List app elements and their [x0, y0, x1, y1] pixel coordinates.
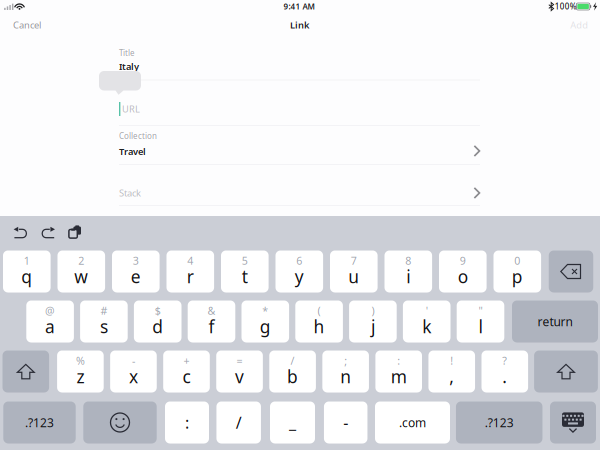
button[interactable]: return — [512, 300, 598, 342]
staticText: * — [262, 303, 268, 318]
staticText: Title — [119, 48, 135, 58]
staticText: - — [132, 353, 135, 368]
button[interactable] — [83, 401, 157, 443]
staticText: w — [74, 265, 88, 288]
button[interactable]: _ — [270, 401, 315, 443]
staticText: g — [260, 315, 271, 338]
button[interactable]: .com — [375, 401, 450, 443]
staticText: r — [187, 265, 194, 288]
staticText: . — [502, 365, 507, 388]
button[interactable]: # — [80, 300, 128, 342]
button[interactable]: = — [216, 350, 263, 392]
staticText: ; — [344, 353, 347, 368]
button[interactable]: 0 — [493, 250, 541, 292]
button[interactable]: $ — [134, 300, 181, 342]
staticText: d — [152, 315, 163, 338]
staticText: Collection — [119, 131, 157, 141]
button[interactable]: Stack — [0, 0, 600, 216]
button[interactable]: 4 — [166, 250, 214, 292]
staticText: % — [76, 353, 85, 368]
staticText: x — [129, 365, 138, 388]
staticText: = — [236, 353, 242, 368]
button[interactable]: ' — [403, 300, 450, 342]
button[interactable]: Undo — [8, 222, 34, 244]
staticText: " — [478, 303, 482, 318]
staticText: c — [182, 365, 190, 388]
staticText: 9 — [460, 253, 466, 268]
staticText: f — [208, 315, 214, 338]
button[interactable]: ) — [349, 300, 397, 342]
staticText: / — [236, 412, 242, 433]
staticText: ! — [450, 353, 453, 368]
button[interactable]: : — [165, 401, 209, 443]
button[interactable]: .?123 — [456, 401, 542, 443]
staticText: ( — [318, 303, 321, 318]
staticText: t — [242, 265, 248, 288]
staticText: s — [100, 315, 108, 338]
staticText: n — [340, 365, 351, 388]
staticText: k — [422, 315, 431, 338]
staticText: b — [287, 365, 298, 388]
button[interactable]: " — [457, 300, 504, 342]
staticText: Cancel — [13, 19, 41, 31]
staticText: Travel — [119, 145, 146, 158]
button[interactable]: Redo — [35, 222, 61, 244]
button[interactable]: 2 — [57, 250, 105, 292]
staticText: 5 — [242, 253, 248, 268]
staticText: q — [21, 265, 32, 288]
staticText: 9:41 AM — [283, 1, 314, 12]
button[interactable]: 8 — [384, 250, 432, 292]
staticText: e — [131, 265, 141, 288]
button[interactable]: & — [188, 300, 235, 342]
button[interactable]: Cancel — [7, 15, 47, 35]
staticText: & — [207, 303, 215, 318]
staticText: v — [235, 365, 244, 388]
button[interactable]: 9 — [439, 250, 487, 292]
staticText: u — [348, 265, 359, 288]
button[interactable] — [549, 250, 593, 292]
staticText: : — [397, 353, 400, 368]
staticText: 4 — [187, 253, 193, 268]
button[interactable] — [550, 401, 596, 443]
staticText: m — [391, 365, 407, 388]
button[interactable]: - — [110, 350, 157, 392]
button[interactable]: 7 — [330, 250, 378, 292]
button[interactable]: / — [269, 350, 316, 392]
button[interactable]: .?123 — [3, 401, 76, 443]
button[interactable]: 3 — [112, 250, 160, 292]
button[interactable]: + — [163, 350, 210, 392]
staticText: Link — [290, 19, 309, 31]
staticText: $ — [155, 303, 161, 318]
staticText: 100% — [555, 1, 577, 12]
staticText: z — [76, 365, 84, 388]
button[interactable]: 5 — [221, 250, 269, 292]
button[interactable]: ! — [428, 350, 475, 392]
staticText: _ — [289, 412, 296, 433]
staticText: # — [100, 303, 107, 318]
button[interactable]: Collection — [0, 0, 600, 216]
button[interactable]: ; — [322, 350, 369, 392]
button[interactable]: @ — [26, 300, 74, 342]
staticText: 2 — [78, 253, 84, 268]
staticText: ) — [371, 303, 374, 318]
button[interactable]: / — [216, 401, 261, 443]
button[interactable] — [2, 350, 49, 392]
staticText: j — [371, 315, 375, 338]
button[interactable]: % — [57, 350, 104, 392]
button[interactable]: 1 — [3, 250, 51, 292]
staticText: .?123 — [25, 414, 54, 430]
button[interactable]: : — [375, 350, 422, 392]
button[interactable]: ( — [295, 300, 343, 342]
staticText: h — [314, 315, 325, 338]
button[interactable]: - — [324, 401, 367, 443]
button[interactable]: 6 — [275, 250, 323, 292]
button[interactable]: Add — [564, 15, 594, 35]
button[interactable]: * — [241, 300, 289, 342]
staticText: URL — [122, 103, 140, 115]
staticText: ' — [426, 303, 428, 318]
staticText: y — [295, 265, 304, 288]
button[interactable]: ? — [481, 350, 528, 392]
button[interactable]: Paste — [62, 221, 88, 243]
staticText: Stack — [119, 187, 141, 199]
button[interactable] — [534, 350, 598, 392]
